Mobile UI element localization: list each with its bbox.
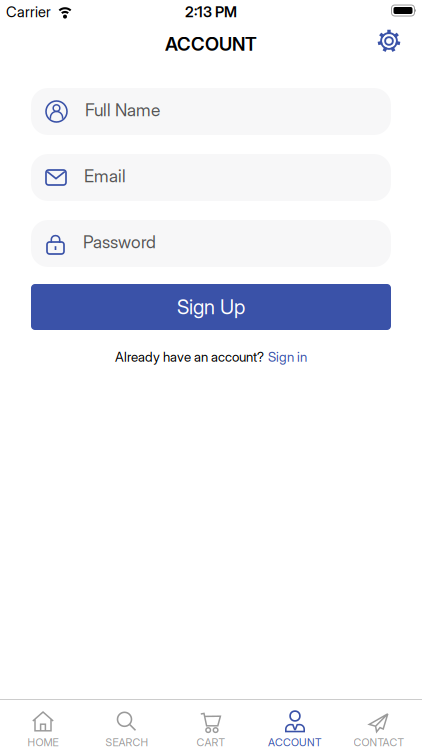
staticText: Full Name (85, 100, 160, 120)
staticText: Already have an account? (115, 349, 264, 365)
staticText: Email (84, 166, 126, 186)
staticText: 2:13 PM (185, 3, 237, 21)
staticText: ACCOUNT (268, 736, 322, 749)
staticText: ACCOUNT (165, 33, 257, 55)
button[interactable]: Full Name (31, 88, 391, 135)
staticText: Sign Up (177, 295, 245, 319)
button[interactable]: HOME (1, 700, 85, 750)
staticText: Carrier (6, 3, 51, 21)
staticText: SEARCH (105, 736, 148, 749)
staticText: Sign in (268, 349, 307, 365)
button[interactable]: Password (31, 220, 391, 267)
button[interactable]: Sign Up (31, 284, 391, 330)
button[interactable]: CONTACT (337, 700, 421, 750)
button[interactable]: ACCOUNT (253, 700, 337, 750)
button[interactable]: Sign in (268, 349, 307, 365)
button[interactable]: SEARCH (85, 700, 169, 750)
staticText: Password (83, 232, 156, 252)
staticText: CART (196, 736, 225, 749)
button[interactable]: CART (169, 700, 253, 750)
staticText: HOME (27, 736, 58, 749)
staticText: CONTACT (353, 736, 404, 749)
button[interactable]: Settings (377, 29, 401, 53)
button[interactable]: Email (31, 154, 391, 201)
